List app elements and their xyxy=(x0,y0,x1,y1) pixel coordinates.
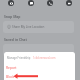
staticText: Snap Map xyxy=(4,14,21,19)
button[interactable]: Call xyxy=(47,0,53,6)
button[interactable]: Block xyxy=(4,71,75,80)
staticText: Share My Live Location xyxy=(12,25,45,29)
button[interactable]: Chat xyxy=(28,0,34,6)
staticText: 1clickremoval.com xyxy=(33,56,56,60)
staticText: Saved in Chat xyxy=(4,37,27,42)
staticText: Manage Friendship xyxy=(7,56,31,60)
button[interactable] xyxy=(3,44,74,56)
button[interactable]: Video call xyxy=(66,0,72,6)
button[interactable]: Share My Live Location xyxy=(3,21,74,33)
staticText: Report xyxy=(6,65,17,69)
button[interactable]: Report xyxy=(4,62,75,71)
button[interactable]: Camera xyxy=(8,0,14,6)
staticText: Block xyxy=(6,74,15,78)
